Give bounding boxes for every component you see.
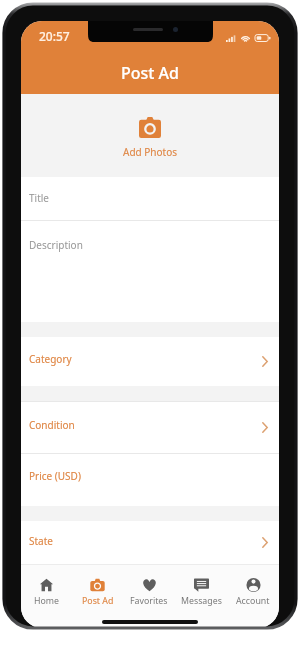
button[interactable]: Price (USD): [21, 453, 279, 506]
staticText: Post Ad: [82, 595, 114, 607]
staticText: State: [29, 534, 53, 548]
button[interactable]: Condition: [21, 401, 279, 453]
staticText: Add Photos: [123, 145, 178, 159]
staticText: Description: [29, 238, 83, 252]
button[interactable]: Title: [21, 177, 279, 221]
button[interactable]: Account: [227, 565, 279, 607]
staticText: Messages: [181, 595, 222, 607]
button[interactable]: Add Photos: [21, 94, 279, 177]
button[interactable]: Home: [21, 565, 72, 607]
button[interactable]: Messages: [175, 565, 227, 607]
staticText: Home: [34, 595, 60, 607]
button[interactable]: Category: [21, 337, 279, 386]
staticText: Account: [236, 595, 270, 607]
button[interactable]: State: [21, 521, 279, 564]
staticText: Post Ad: [121, 62, 180, 84]
button[interactable]: Post Ad: [72, 565, 123, 607]
staticText: Favorites: [130, 595, 168, 607]
staticText: Condition: [29, 418, 75, 432]
button[interactable]: Description: [21, 221, 279, 322]
staticText: Category: [29, 352, 72, 366]
staticText: 20:57: [39, 28, 70, 44]
staticText: Title: [29, 191, 49, 205]
button[interactable]: Favorites: [123, 565, 175, 607]
staticText: Price (USD): [29, 469, 81, 483]
